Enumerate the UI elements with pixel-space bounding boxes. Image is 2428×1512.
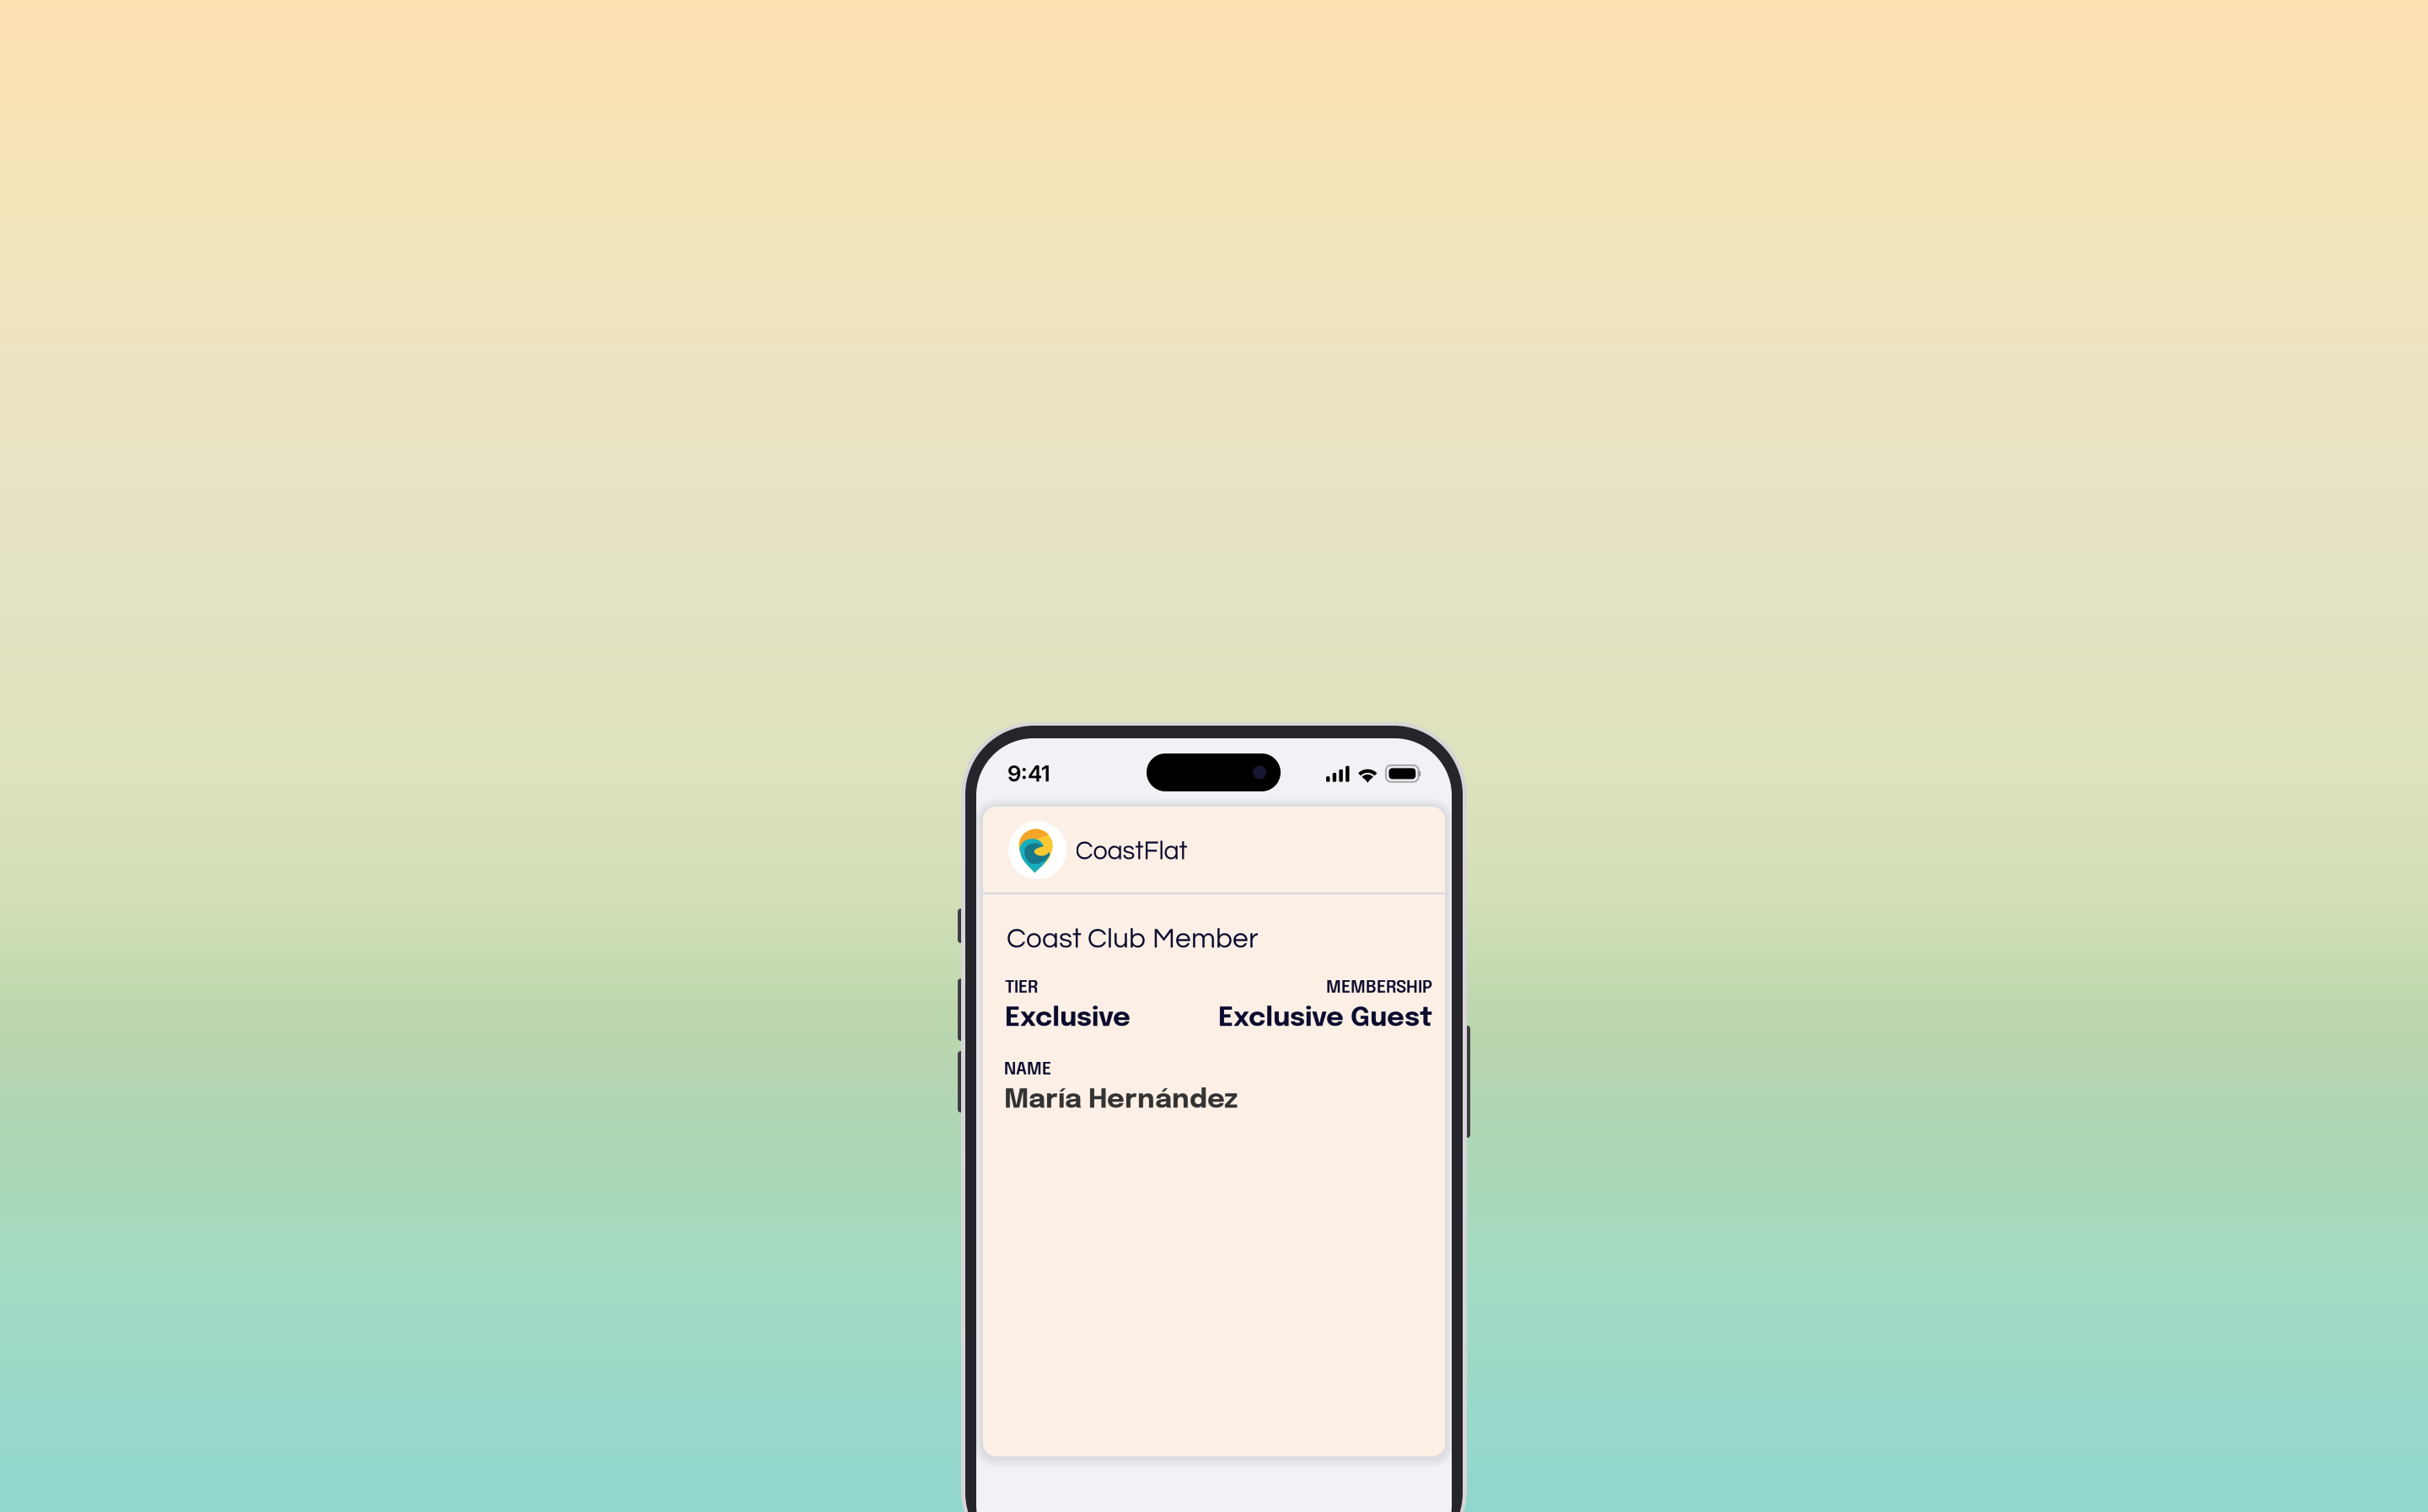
staticText: Exclusive [1005,1005,1131,1032]
staticText: TIER [1005,979,1038,997]
staticText: CoastFlat [1075,838,1188,865]
staticText: Coast Club Member [1007,925,1259,953]
staticText: NAME [1004,1061,1051,1078]
staticText: 9:41 [1007,760,1050,787]
button[interactable]: CoastFlat [983,807,1445,893]
staticText: María Hernández [1004,1086,1238,1114]
staticText: MEMBERSHIP [1326,979,1432,997]
staticText: Exclusive Guest [1218,1005,1432,1032]
